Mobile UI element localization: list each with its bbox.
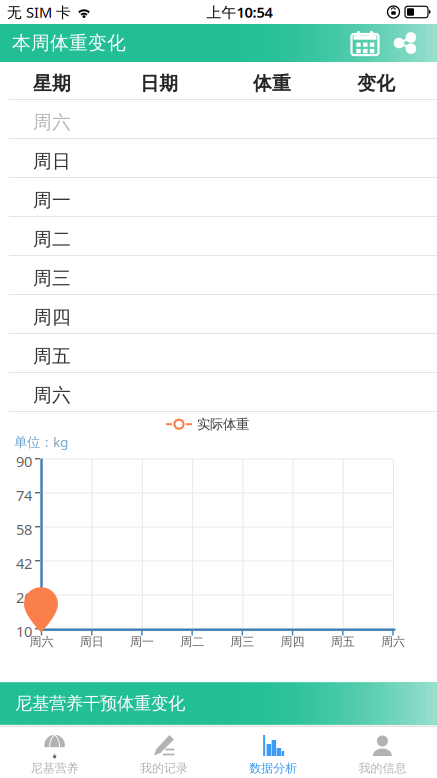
staticText: 58: [16, 519, 32, 539]
staticText: 星期: [33, 72, 71, 95]
button[interactable]: 周六: [0, 100, 437, 139]
button[interactable]: 周一: [0, 178, 437, 217]
staticText: 周一: [33, 189, 71, 212]
staticText: 无 SIM 卡: [7, 2, 71, 22]
button[interactable]: 分享: [386, 24, 424, 62]
staticText: 周六: [381, 634, 405, 649]
staticText: 周日: [80, 634, 104, 649]
staticText: 数据分析: [249, 761, 297, 776]
staticText: 尼基营养干预体重变化: [15, 693, 185, 714]
staticText: 周六: [33, 111, 71, 134]
button[interactable]: 数据分析: [218, 727, 328, 778]
staticText: 周五: [33, 345, 71, 368]
staticText: 10: [16, 621, 32, 641]
staticText: 周二: [33, 228, 71, 251]
staticText: 周三: [230, 634, 254, 649]
button[interactable]: 周三: [0, 256, 437, 295]
button[interactable]: 我的信息: [328, 727, 437, 778]
staticText: 周一: [130, 634, 154, 649]
button[interactable]: 周五: [0, 334, 437, 373]
staticText: 42: [16, 553, 32, 573]
staticText: 体重: [253, 72, 291, 95]
button[interactable]: 周二: [0, 217, 437, 256]
staticText: 单位：kg: [14, 433, 68, 451]
staticText: 周三: [33, 267, 71, 290]
staticText: 周四: [33, 306, 71, 329]
staticText: 周二: [180, 634, 204, 649]
staticText: 变化: [357, 72, 395, 95]
staticText: 周四: [281, 634, 305, 649]
button[interactable]: 日历: [344, 24, 386, 62]
staticText: 实际体重: [197, 416, 249, 432]
staticText: 上午10:54: [206, 2, 272, 22]
staticText: 26: [16, 587, 32, 607]
staticText: 我的信息: [358, 761, 406, 776]
staticText: 周日: [33, 150, 71, 173]
staticText: 我的记录: [140, 761, 188, 776]
button[interactable]: 周六: [0, 373, 437, 412]
button[interactable]: 尼基营养: [0, 727, 109, 778]
staticText: 周六: [33, 384, 71, 407]
staticText: 尼基营养: [31, 761, 79, 776]
button[interactable]: 尼基营养干预体重变化: [0, 682, 437, 724]
staticText: 90: [16, 451, 32, 471]
staticText: 周五: [331, 634, 355, 649]
staticText: 74: [16, 485, 32, 505]
button[interactable]: 我的记录: [109, 727, 218, 778]
staticText: 周六: [29, 634, 53, 649]
staticText: 日期: [140, 72, 178, 95]
staticText: 本周体重变化: [12, 31, 126, 54]
button[interactable]: 周四: [0, 295, 437, 334]
button[interactable]: 周日: [0, 139, 437, 178]
